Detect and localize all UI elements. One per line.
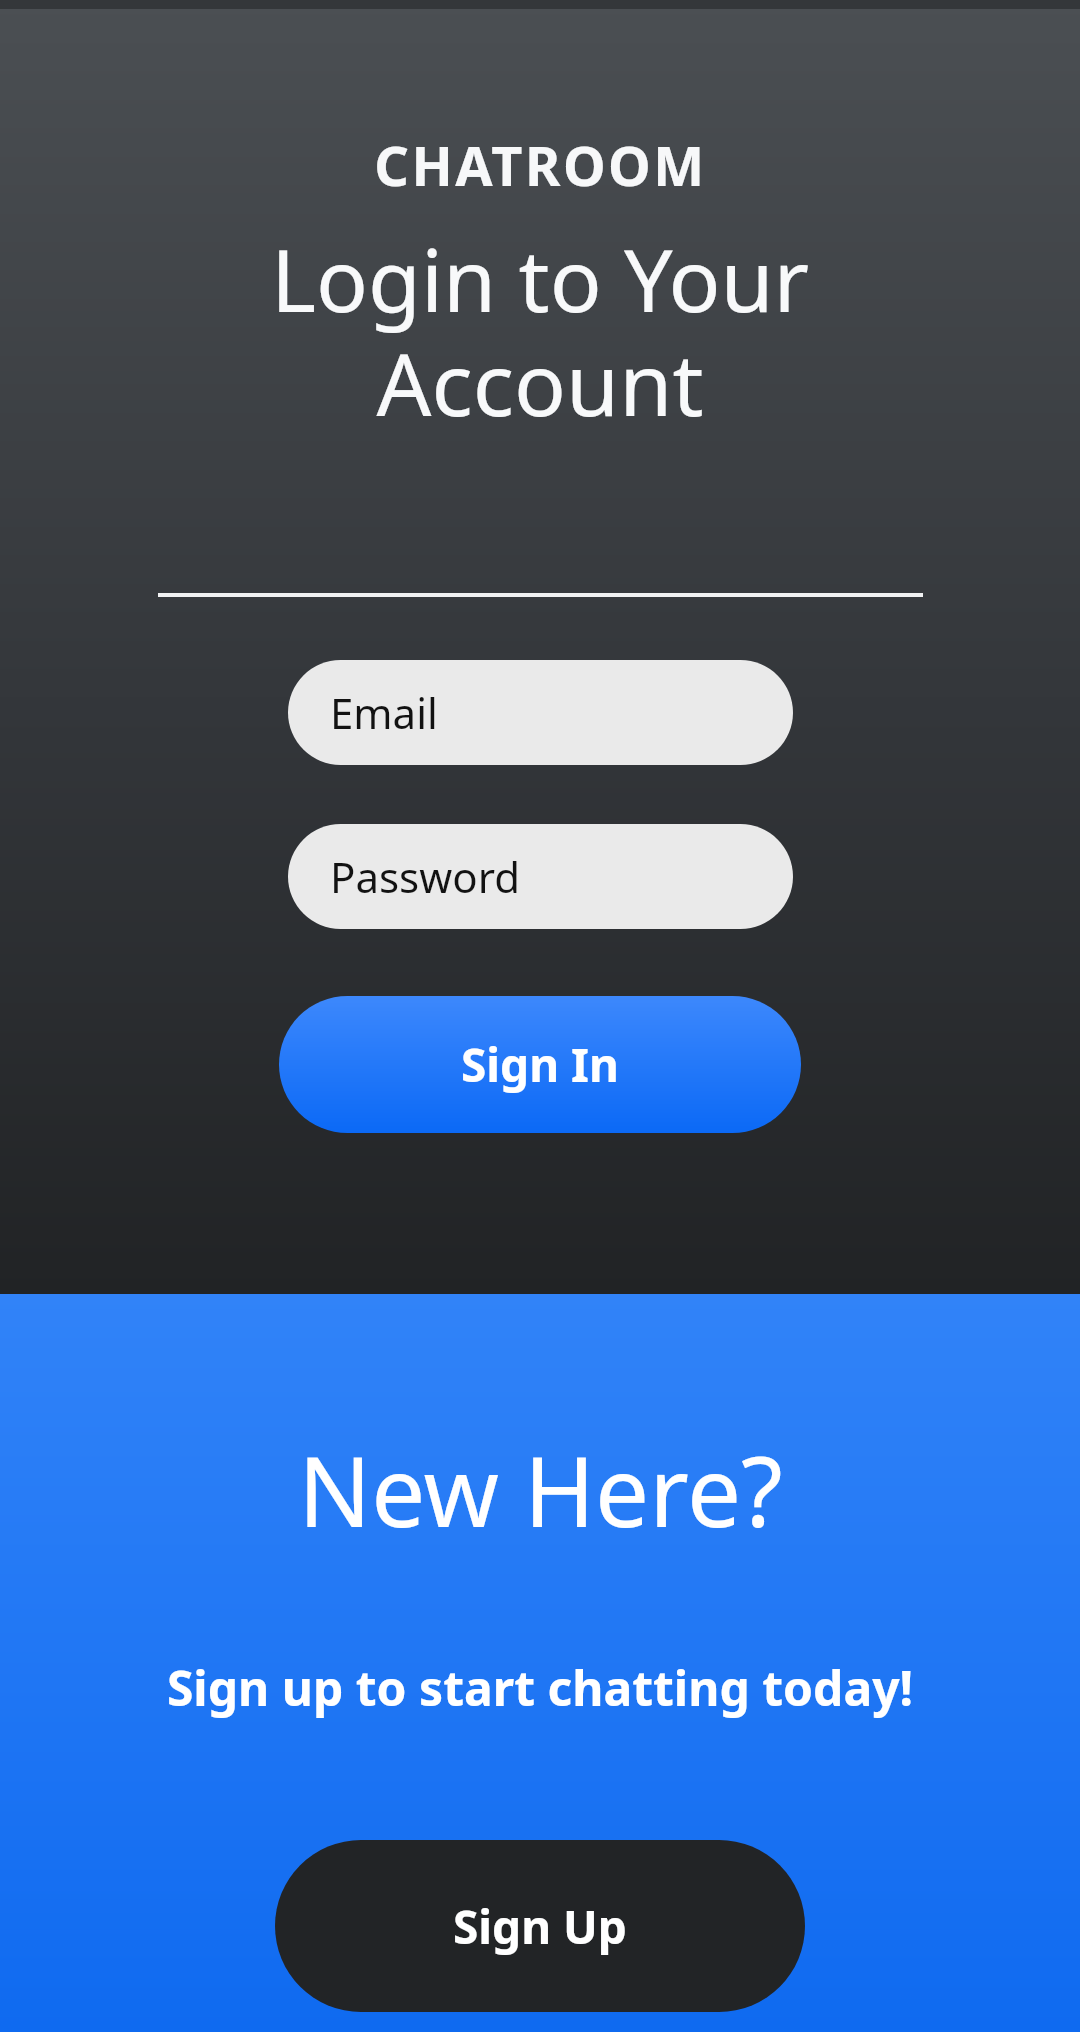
staticText: Login to Your Account — [110, 220, 970, 441]
staticText: Password — [330, 848, 520, 905]
button[interactable]: Password — [288, 824, 793, 929]
staticText: Sign In — [461, 1033, 619, 1096]
staticText: Email — [330, 684, 438, 741]
button[interactable]: Email — [288, 660, 793, 765]
button[interactable]: Sign Up — [275, 1840, 805, 2012]
button[interactable]: Sign In — [279, 996, 801, 1133]
staticText: New Here? — [298, 1424, 783, 1555]
staticText: Sign up to start chatting today! — [40, 1655, 1040, 1720]
staticText: CHATROOM — [374, 128, 707, 202]
staticText: Sign Up — [453, 1895, 627, 1958]
